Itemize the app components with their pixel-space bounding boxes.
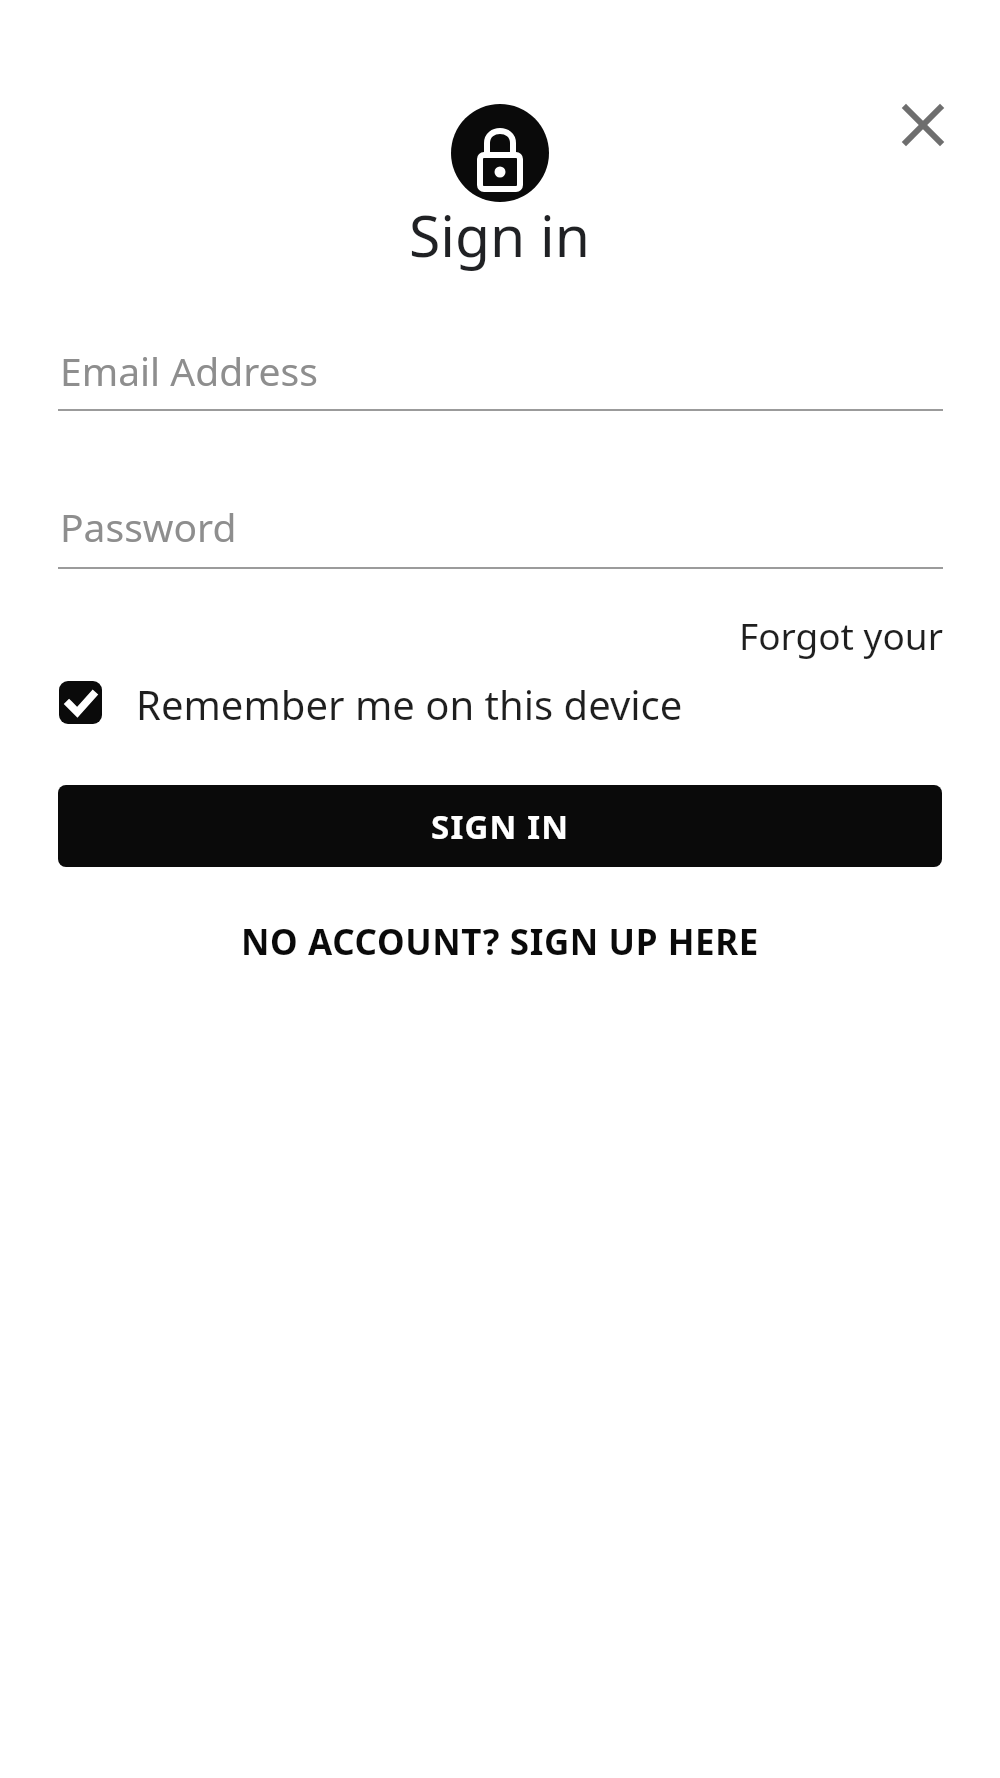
button[interactable]: Forgot your password? <box>560 610 943 666</box>
staticText: Forgot your password? <box>560 610 943 666</box>
staticText: Password <box>60 500 237 553</box>
button[interactable]: Email Address <box>58 296 943 411</box>
button[interactable]: Close <box>889 91 957 159</box>
staticText: NO ACCOUNT? SIGN UP HERE <box>241 918 760 966</box>
staticText: Remember me on this device <box>136 677 683 731</box>
staticText: SIGN IN <box>431 804 570 849</box>
staticText: Email Address <box>60 344 318 397</box>
button[interactable]: SIGN IN <box>58 785 942 867</box>
staticText: Sign in <box>409 196 591 274</box>
button[interactable]: NO ACCOUNT? SIGN UP HERE <box>200 906 800 978</box>
button[interactable]: Remember me on this device <box>58 676 683 732</box>
button[interactable]: Password <box>58 452 943 569</box>
